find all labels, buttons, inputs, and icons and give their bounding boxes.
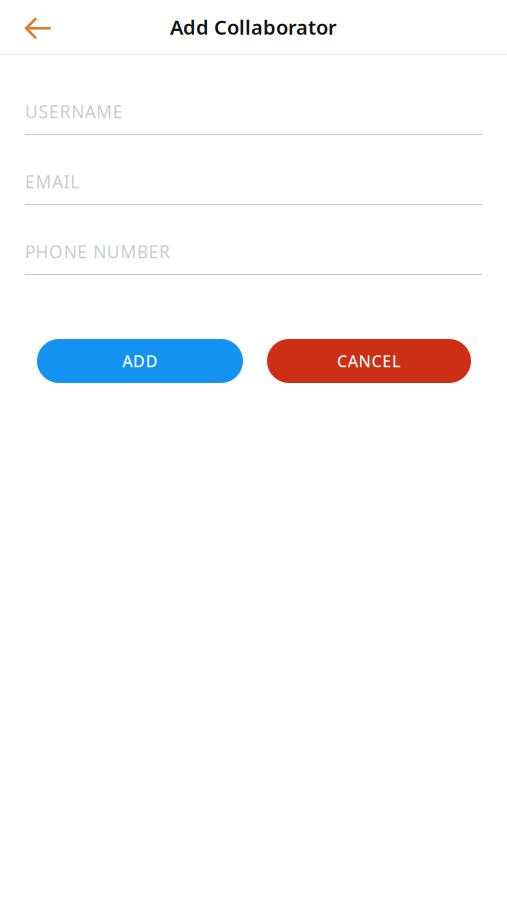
button[interactable]: CANCEL [267,339,471,383]
button[interactable]: ADD [37,339,243,383]
button[interactable]: PHONE NUMBER [25,235,482,275]
staticText: ADD [122,350,158,372]
staticText: Add Collaborator [170,14,337,40]
button[interactable]: EMAIL [25,165,482,205]
staticText: EMAIL [25,170,79,193]
staticText: CANCEL [337,350,401,372]
button[interactable]: USERNAME [25,95,482,135]
button[interactable]: Back [0,0,76,54]
staticText: USERNAME [25,100,123,123]
staticText: PHONE NUMBER [25,240,170,263]
